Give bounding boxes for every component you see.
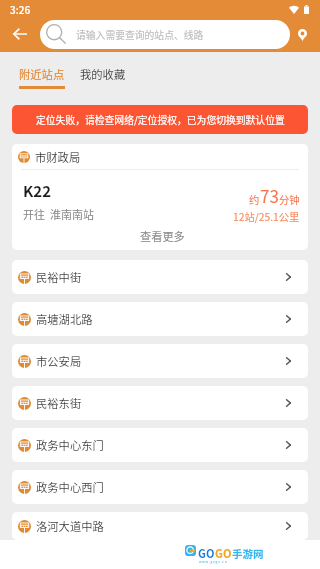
button[interactable]: Back [7, 21, 33, 47]
staticText: 民裕中街 [36, 269, 286, 285]
staticText: 政务中心西门 [36, 479, 286, 495]
staticText: 请输入需要查询的站点、线路 [76, 28, 204, 42]
button[interactable]: 定位失败，请检查网络/定位授权，已为您切换到默认位置 [12, 105, 308, 134]
staticText: 查看更多 [140, 228, 185, 244]
button[interactable]: 政务中心东门 [12, 428, 308, 462]
staticText: 3:26 [10, 2, 31, 16]
button[interactable]: 民裕中街 [12, 260, 308, 294]
staticText: 我的收藏 [80, 66, 126, 82]
staticText: 约 [249, 192, 260, 207]
button[interactable]: 市公安局 [12, 344, 308, 378]
button[interactable]: 附近站点 [19, 52, 65, 89]
staticText: GO [215, 545, 232, 561]
staticText: 开往 淮南南站 [23, 206, 94, 222]
staticText: 市公安局 [36, 353, 286, 369]
button[interactable]: 民裕东街 [12, 386, 308, 420]
button[interactable]: 请输入需要查询的站点、线路 [40, 20, 290, 49]
button[interactable]: 我的收藏 [80, 52, 126, 82]
staticText: 高塘湖北路 [36, 311, 286, 327]
staticText: 手游网 [232, 546, 264, 561]
button[interactable]: 高塘湖北路 [12, 302, 308, 336]
staticText: 民裕东街 [36, 395, 286, 411]
staticText: K22 [23, 180, 51, 202]
button[interactable]: 洛河大道中路 [12, 512, 308, 540]
staticText: 洛河大道中路 [36, 518, 286, 534]
staticText: 附近站点 [19, 66, 65, 82]
staticText: 12站/25.1公里 [233, 209, 300, 224]
staticText: 市财政局 [35, 149, 81, 165]
staticText: GO [198, 545, 215, 561]
button[interactable]: 政务中心西门 [12, 470, 308, 504]
staticText: 73 [260, 183, 279, 208]
staticText: w w w . g o g o . c n [199, 559, 227, 564]
staticText: 定位失败，请检查网络/定位授权，已为您切换到默认位置 [36, 113, 285, 127]
staticText: 分钟 [279, 192, 300, 207]
button[interactable]: Location [289, 22, 315, 48]
staticText: 政务中心东门 [36, 437, 286, 453]
button[interactable]: 查看更多 [12, 222, 308, 250]
